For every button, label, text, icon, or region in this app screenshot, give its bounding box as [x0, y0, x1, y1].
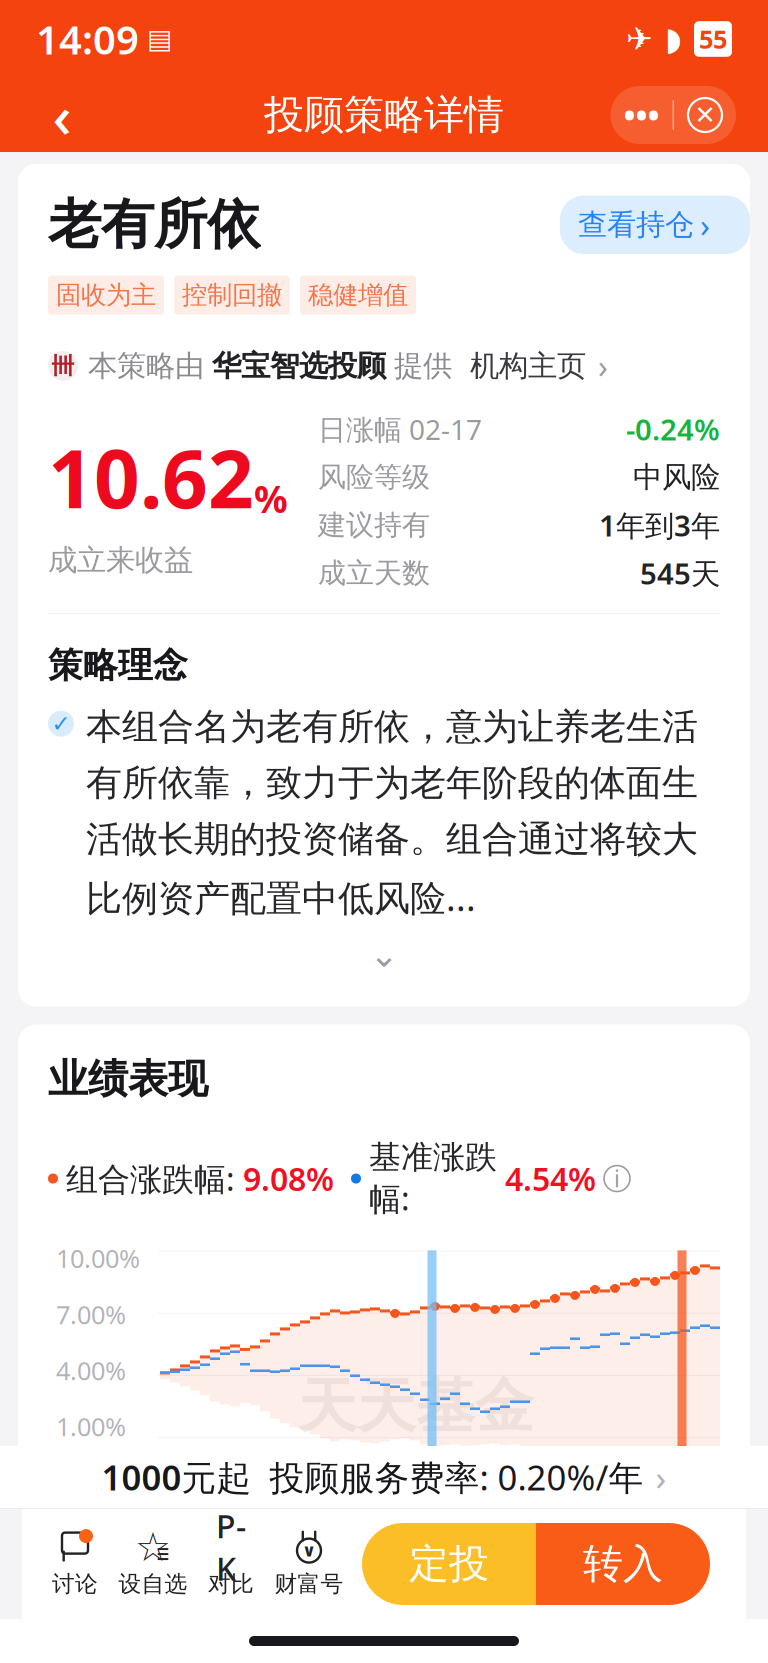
staticText: 转入	[583, 1539, 663, 1588]
staticText: 组合涨跌幅:	[66, 1157, 235, 1200]
staticText: •••	[623, 94, 659, 136]
button[interactable]: 更多	[610, 86, 672, 144]
button[interactable]: 讨论	[36, 1524, 114, 1604]
staticText: 策略组合的过往业绩并不预示其未来表现，为其他客户创造的收益...	[48, 1585, 699, 1663]
staticText: ‹	[52, 76, 71, 154]
staticText: 10.62	[48, 424, 254, 530]
staticText: PK	[216, 1505, 246, 1590]
staticText: 对比	[208, 1570, 254, 1598]
staticText: 1年到3年	[599, 506, 720, 545]
staticText: 稳健增值	[308, 279, 408, 311]
staticText: 本组合名为老有所依，意为让养老生活有所依靠，致力于为老年阶段的体面生活做长期的投…	[86, 705, 698, 921]
button[interactable]: 卌	[48, 315, 720, 387]
staticText: 买了	[657, 1463, 707, 1494]
button[interactable]: ∨	[270, 1524, 348, 1604]
staticText: %	[254, 474, 288, 523]
staticText: 基准涨跌幅:	[369, 1138, 497, 1219]
staticText: 14:09	[36, 12, 139, 65]
staticText: 10.00%	[56, 1241, 140, 1275]
staticText: ›	[700, 203, 710, 246]
button[interactable]: 返回	[32, 85, 92, 145]
staticText: 策略理念	[48, 644, 188, 687]
staticText: 投顾服务费率: 0.20%/年	[269, 1454, 643, 1500]
button[interactable]: PK	[192, 1524, 270, 1604]
button[interactable]: 基准说明	[604, 1163, 630, 1194]
staticText: 2025-02-17	[574, 1507, 720, 1545]
button[interactable]: 展开	[48, 921, 720, 986]
staticText: 1000元起	[101, 1454, 251, 1500]
button[interactable]: 定投	[362, 1523, 536, 1605]
button[interactable]: 1000元起	[0, 1446, 768, 1508]
staticText: 调仓	[407, 1463, 457, 1494]
staticText: ✓	[51, 711, 70, 736]
staticText: 风险等级	[318, 460, 430, 494]
staticText: 545天	[640, 554, 720, 593]
staticText: ◗	[665, 21, 682, 57]
staticText: ⌄	[369, 935, 398, 974]
staticText: 讨论	[52, 1570, 98, 1598]
staticText: 财富号	[274, 1570, 343, 1598]
staticText: 控制回撤	[182, 279, 282, 311]
staticText: ✈	[626, 21, 653, 57]
staticText: ☆	[135, 1524, 171, 1570]
staticText: -2.00%	[56, 1466, 134, 1499]
button[interactable]: 关闭	[674, 86, 736, 144]
staticText: 7.00%	[56, 1297, 126, 1331]
staticText: 设自选	[118, 1570, 187, 1598]
staticText: 4.54%	[505, 1157, 596, 1200]
staticText: 定投	[409, 1539, 489, 1588]
staticText: 本策略由	[88, 348, 204, 384]
staticText: 1.00%	[56, 1410, 126, 1443]
staticText: 2024-02-08	[158, 1507, 304, 1545]
staticText: 55	[699, 22, 727, 56]
staticText: 固收为主	[56, 279, 156, 311]
staticText: ›	[655, 1454, 666, 1500]
staticText: ▤	[147, 24, 172, 54]
staticText: 提供	[394, 348, 452, 384]
staticText: 日涨幅 02-17	[318, 410, 482, 448]
staticText: ›	[598, 345, 608, 387]
staticText: 中风险	[633, 459, 720, 495]
staticText: -0.24%	[626, 410, 720, 449]
button[interactable]: 查看持仓	[560, 195, 720, 254]
staticText: 天天基金	[298, 1370, 534, 1442]
staticText: 卌	[51, 352, 74, 380]
staticText: 机构主页	[470, 348, 586, 384]
button[interactable]: 转入	[536, 1523, 710, 1605]
staticText: 建议持有	[318, 508, 430, 542]
staticText: 成立天数	[318, 556, 430, 590]
staticText: ∨	[302, 1541, 316, 1560]
staticText: 成立来收益	[48, 542, 193, 578]
staticText: 4.00%	[56, 1354, 126, 1387]
staticText: 投顾策略详情	[264, 90, 504, 139]
staticText: 业绩表现	[48, 1054, 208, 1104]
staticText: 查看持仓	[578, 207, 694, 243]
staticText: ✕	[694, 101, 715, 129]
staticText: 9.08%	[243, 1157, 334, 1200]
button[interactable]: ☆	[114, 1524, 192, 1604]
staticText: 华宝智选投顾	[212, 348, 386, 384]
staticText: i	[614, 1163, 620, 1194]
staticText: 老有所依	[48, 192, 260, 257]
